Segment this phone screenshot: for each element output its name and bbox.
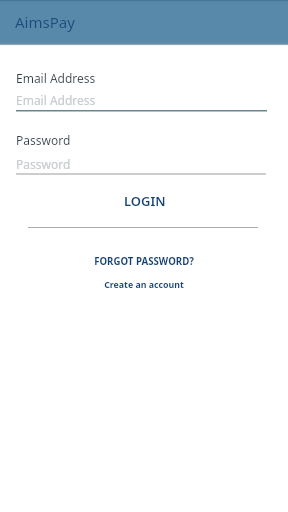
staticText: Password bbox=[16, 132, 71, 148]
button[interactable]: Create an account bbox=[0, 275, 288, 295]
staticText: Email Address bbox=[16, 92, 96, 108]
button[interactable] bbox=[16, 126, 266, 177]
staticText: Email Address bbox=[16, 70, 96, 86]
staticText: Create an account bbox=[104, 279, 184, 291]
staticText: FORGOT PASSWORD? bbox=[94, 255, 194, 268]
staticText: AimsPay bbox=[15, 12, 75, 32]
button[interactable] bbox=[16, 64, 267, 114]
button[interactable]: LOGIN bbox=[28, 183, 258, 219]
button[interactable]: FORGOT PASSWORD? bbox=[0, 251, 288, 271]
staticText: LOGIN bbox=[124, 192, 166, 210]
staticText: Password bbox=[16, 156, 71, 172]
